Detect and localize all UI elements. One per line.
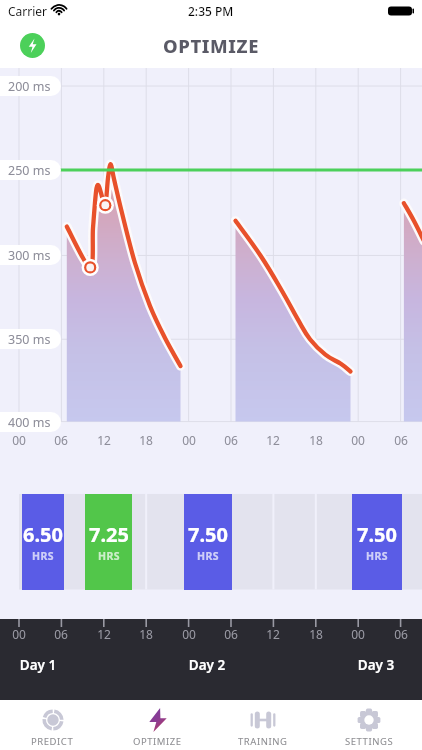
staticText: OPTIMIZE [133, 735, 182, 748]
staticText: 00 [5, 432, 33, 448]
staticText: 7.50 [188, 521, 228, 548]
button[interactable]: SETTINGS [316, 700, 422, 750]
button[interactable]: 6.50 [22, 494, 64, 590]
staticText: 18 [132, 432, 160, 448]
staticText: 350 ms [8, 331, 51, 348]
staticText: 06 [387, 626, 415, 642]
staticText: 06 [47, 626, 75, 642]
staticText: 06 [387, 432, 415, 448]
staticText: 12 [90, 626, 118, 642]
staticText: PREDICT [31, 735, 74, 748]
button[interactable]: Optimize status [20, 33, 45, 58]
button[interactable]: 7.50 [184, 494, 232, 590]
staticText: 00 [344, 432, 372, 448]
staticText: 400 ms [8, 414, 51, 431]
staticText: 7.50 [357, 521, 397, 548]
staticText: HRS [197, 549, 219, 563]
button[interactable]: PREDICT [0, 700, 105, 750]
staticText: 06 [217, 432, 245, 448]
button[interactable]: TRAINING [210, 700, 316, 750]
staticText: 18 [132, 626, 160, 642]
staticText: 12 [259, 432, 287, 448]
staticText: 200 ms [8, 78, 51, 95]
staticText: 06 [217, 626, 245, 642]
button[interactable]: 7.50 [352, 494, 402, 590]
staticText: OPTIMIZE [163, 33, 260, 58]
staticText: 00 [5, 626, 33, 642]
staticText: 18 [302, 626, 330, 642]
staticText: TRAINING [238, 735, 288, 748]
staticText: 00 [175, 432, 203, 448]
staticText: 7.25 [89, 521, 129, 548]
staticText: 06 [47, 432, 75, 448]
button[interactable]: 7.25 [85, 494, 132, 590]
staticText: Day 2 [167, 656, 247, 674]
staticText: Day 3 [336, 656, 416, 674]
staticText: 00 [344, 626, 372, 642]
staticText: 18 [302, 432, 330, 448]
staticText: HRS [98, 549, 120, 563]
button[interactable]: OPTIMIZE [105, 700, 210, 750]
staticText: HRS [366, 549, 388, 563]
staticText: 00 [175, 626, 203, 642]
staticText: HRS [32, 549, 54, 563]
staticText: 12 [90, 432, 118, 448]
staticText: SETTINGS [345, 735, 394, 748]
staticText: 6.50 [23, 521, 63, 548]
staticText: 300 ms [8, 247, 51, 264]
staticText: 12 [259, 626, 287, 642]
staticText: Day 1 [0, 656, 78, 674]
staticText: 2:35 PM [188, 3, 234, 19]
staticText: Carrier [8, 3, 48, 19]
staticText: 250 ms [8, 162, 51, 179]
